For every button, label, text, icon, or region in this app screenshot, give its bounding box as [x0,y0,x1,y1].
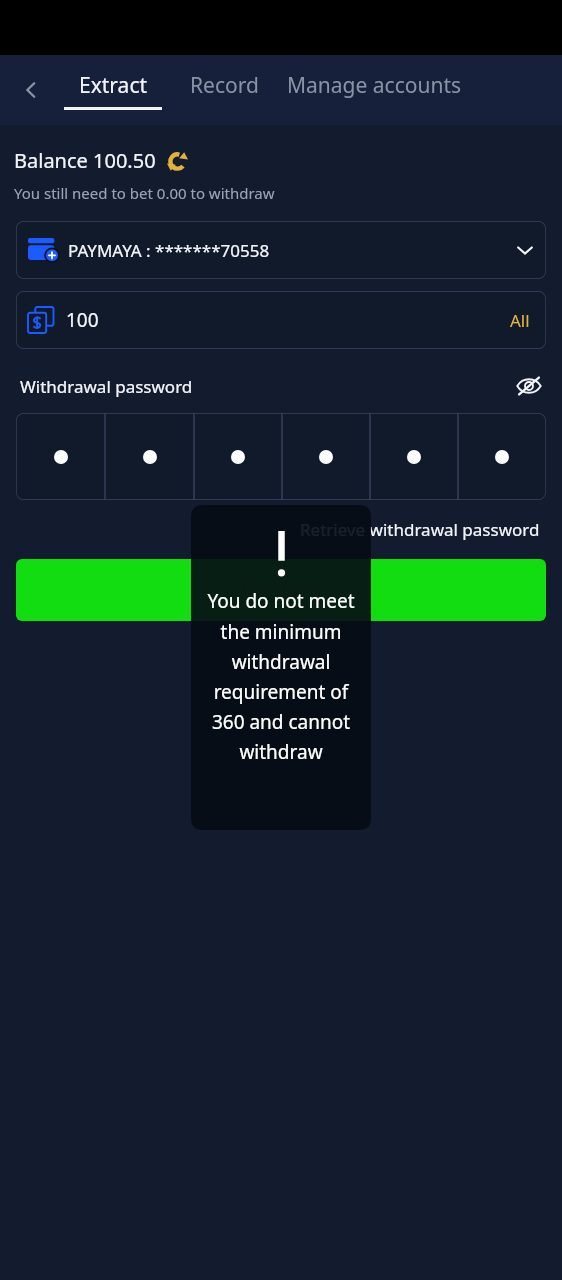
staticText: Manage accounts [287,71,462,100]
button[interactable]: Manage accounts [283,69,466,112]
button[interactable]: Refresh balance [164,148,190,174]
button[interactable]: Back [10,69,52,111]
button[interactable]: PAYMAYA : *******70558 [16,221,546,279]
button[interactable]: Extract [60,69,166,112]
button[interactable]: Record [186,69,263,112]
staticText: Record [190,71,259,100]
staticText: 100 [66,307,99,333]
staticText: You still need to bet 0.00 to withdraw [14,183,275,203]
staticText: PAYMAYA : *******70558 [68,239,270,262]
staticText: Extract [79,71,148,100]
button[interactable]: Retrieve withdrawal password [296,512,544,547]
button[interactable] [105,413,194,500]
button[interactable] [16,413,105,500]
button[interactable] [282,413,370,500]
staticText: You do not meet the minimum withdrawal r… [205,588,357,764]
button[interactable] [194,413,282,500]
button[interactable]: 100 [16,291,546,349]
staticText: Retrieve withdrawal password [300,518,540,541]
button[interactable] [370,413,458,500]
button[interactable]: Confirm [16,559,546,621]
staticText: Withdrawal password [20,375,193,398]
staticText: Confirm [241,576,321,605]
button[interactable] [458,413,546,500]
staticText: All [510,309,530,332]
staticText: Balance 100.50 [14,147,156,174]
button[interactable]: All [506,303,534,338]
button[interactable]: Toggle password visibility [512,369,546,403]
